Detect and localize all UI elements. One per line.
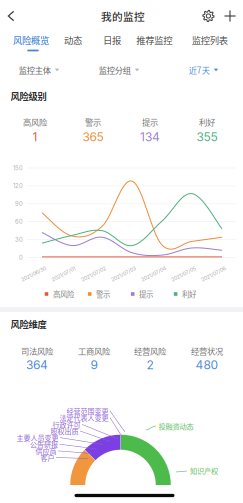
- staticText: 480: [195, 358, 218, 372]
- staticText: 风险概览: [13, 33, 49, 47]
- staticText: 60: [15, 218, 23, 225]
- staticText: 推荐监控: [136, 33, 172, 47]
- staticText: 风险级别: [10, 89, 46, 103]
- staticText: 2021/07/01: [50, 271, 76, 277]
- staticText: 日报: [103, 33, 121, 47]
- staticText: 投融资动态: [158, 421, 193, 431]
- button[interactable]: 动态: [60, 29, 86, 51]
- staticText: 风险维度: [10, 317, 46, 331]
- staticText: 司法风险: [21, 345, 53, 357]
- staticText: 150: [13, 164, 23, 172]
- staticText: 客户: [40, 452, 54, 463]
- staticText: 监控主体: [19, 64, 51, 76]
- staticText: 知识产权: [190, 465, 218, 476]
- staticText: 供应商: [35, 446, 56, 456]
- staticText: 1: [32, 130, 37, 144]
- staticText: 监控分组: [99, 64, 131, 76]
- staticText: 工商风险: [78, 345, 110, 357]
- button[interactable]: 日报: [99, 29, 125, 51]
- staticText: 行政许可: [52, 419, 80, 429]
- staticText: 近7天: [189, 64, 210, 76]
- staticText: 经营风险: [134, 345, 166, 357]
- staticText: 高风险: [53, 289, 74, 299]
- staticText: 经营状况: [191, 345, 223, 357]
- staticText: 120: [13, 182, 23, 189]
- staticText: 动态: [64, 33, 82, 47]
- staticText: 股权出质: [50, 426, 78, 436]
- staticText: 公告研报: [30, 439, 58, 449]
- button[interactable]: 监控列表: [188, 29, 232, 51]
- button[interactable]: 近7天: [189, 60, 218, 80]
- staticText: 2: [146, 358, 153, 372]
- button[interactable]: 推荐监控: [132, 29, 176, 51]
- button[interactable]: 风险概览: [9, 29, 53, 51]
- staticText: 提示: [139, 289, 153, 299]
- staticText: 高风险: [23, 116, 47, 128]
- staticText: 监控列表: [192, 33, 228, 47]
- button[interactable]: Add: [220, 5, 240, 27]
- staticText: 134: [140, 130, 160, 144]
- staticText: 警示: [85, 116, 101, 128]
- staticText: 355: [196, 130, 217, 144]
- staticText: 利好: [182, 289, 196, 299]
- staticText: 2021/07/03: [110, 271, 137, 277]
- staticText: 我的监控: [101, 8, 145, 24]
- button[interactable]: 监控主体: [19, 60, 59, 80]
- staticText: 365: [82, 130, 103, 144]
- staticText: 提示: [142, 116, 158, 128]
- staticText: 2021/07/02: [80, 271, 107, 277]
- staticText: 主要人员变更: [16, 432, 58, 443]
- staticText: 90: [15, 200, 23, 207]
- staticText: 2021/07/06: [200, 271, 227, 277]
- staticText: 30: [15, 236, 23, 243]
- staticText: 利好: [199, 116, 215, 128]
- staticText: 9: [90, 358, 97, 372]
- staticText: 警示: [96, 289, 110, 299]
- button[interactable]: Settings: [198, 5, 218, 27]
- staticText: 2021/07/05: [170, 271, 197, 277]
- staticText: 经营范围变更: [66, 406, 108, 416]
- staticText: 0: [19, 254, 23, 261]
- button[interactable]: 监控分组: [99, 60, 139, 80]
- staticText: 2021/06/30: [20, 271, 47, 277]
- staticText: 364: [26, 358, 48, 372]
- staticText: 法定代表人变更: [59, 413, 108, 423]
- button[interactable]: Back: [0, 3, 23, 29]
- staticText: 2021/07/04: [140, 271, 167, 277]
